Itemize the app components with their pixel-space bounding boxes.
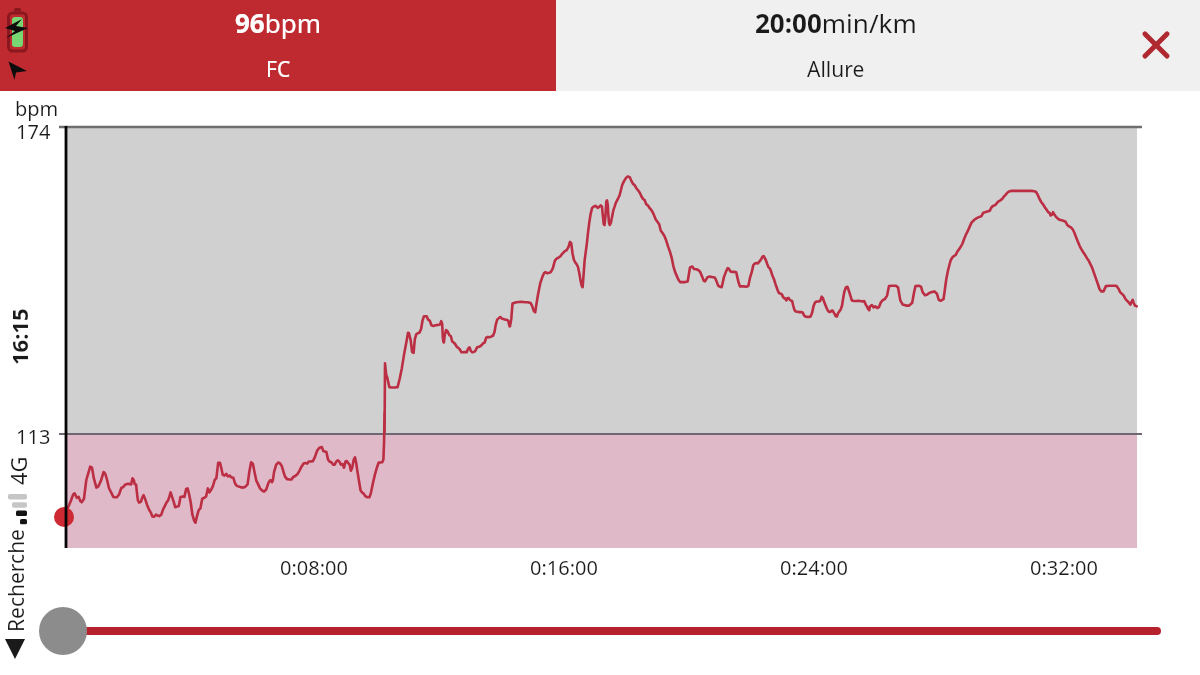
staticText: 174 bbox=[16, 118, 51, 145]
staticText: 0:32:00 bbox=[1030, 554, 1098, 581]
button[interactable]: 20:00min/km bbox=[556, 0, 1200, 91]
staticText: 0:16:00 bbox=[530, 554, 598, 581]
button[interactable]: Close bbox=[1132, 21, 1180, 69]
staticText: 16:15 bbox=[4, 308, 34, 365]
staticText: 0:24:00 bbox=[780, 554, 848, 581]
button[interactable]: 96bpm bbox=[0, 0, 556, 91]
button[interactable]: Heart-rate graph bbox=[66, 127, 1137, 548]
staticText: 0:08:00 bbox=[280, 554, 348, 581]
staticText: FC bbox=[266, 55, 291, 84]
staticText: 4G bbox=[3, 456, 33, 485]
staticText: Allure bbox=[807, 55, 865, 84]
staticText: Recherche bbox=[2, 529, 31, 632]
staticText: 113 bbox=[16, 423, 51, 450]
staticText: 96bpm bbox=[235, 5, 322, 40]
button[interactable]: Scrub position bbox=[39, 607, 87, 655]
staticText: 20:00min/km bbox=[755, 5, 917, 40]
staticText: bpm bbox=[15, 95, 59, 122]
